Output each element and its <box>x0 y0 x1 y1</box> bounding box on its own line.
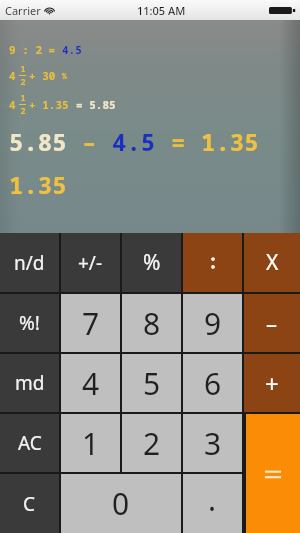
staticText: 8 <box>143 303 161 344</box>
staticText: – <box>266 308 278 338</box>
staticText: % <box>143 248 161 277</box>
button[interactable]: 9 <box>183 294 242 352</box>
button[interactable]: 2 <box>122 414 181 472</box>
staticText: 6 <box>204 363 222 404</box>
staticText: AC <box>18 430 42 456</box>
button[interactable]: 8 <box>122 294 181 352</box>
button[interactable]: %! <box>0 294 59 352</box>
staticText: – <box>82 125 97 158</box>
button[interactable]: Equals <box>246 414 300 533</box>
staticText: 11:05 AM <box>137 3 186 18</box>
staticText: n/d <box>14 250 45 276</box>
staticText: % <box>62 70 67 81</box>
staticText: md <box>15 370 45 396</box>
staticText: . <box>208 479 217 520</box>
staticText: 4 <box>9 97 16 112</box>
staticText: 3 <box>204 423 222 464</box>
staticText: C <box>23 491 36 517</box>
staticText: X <box>266 248 279 277</box>
button[interactable]: X <box>244 233 300 292</box>
staticText: 9 : 2 = <box>9 42 62 57</box>
button[interactable]: 3 <box>183 414 242 472</box>
staticText: 1 <box>20 63 26 75</box>
staticText: %! <box>19 310 40 336</box>
staticText: 4 <box>9 68 16 83</box>
staticText: 5.85 <box>9 125 67 158</box>
staticText: 1.35 <box>201 125 259 158</box>
staticText: + 30 <box>29 68 62 83</box>
other: Equals <box>260 461 286 487</box>
staticText: + 1.35 <box>29 97 76 112</box>
button[interactable]: C <box>0 474 59 533</box>
button[interactable]: 1 <box>61 414 120 472</box>
staticText: 9 <box>204 303 222 344</box>
staticText: Carrier <box>5 3 41 18</box>
staticText: 2 <box>20 105 26 117</box>
button[interactable]: 5 <box>122 354 181 412</box>
button[interactable]: Divide <box>183 233 242 292</box>
staticText: +/- <box>78 250 103 276</box>
button[interactable]: 7 <box>61 294 120 352</box>
staticText: 4 <box>82 363 100 404</box>
button[interactable]: md <box>0 354 59 412</box>
staticText: 4.5 <box>112 125 156 158</box>
staticText: 5 <box>143 363 161 404</box>
button[interactable]: + <box>244 354 300 412</box>
other: Divide <box>202 252 224 274</box>
staticText: = 5.85 <box>76 97 116 112</box>
button[interactable]: AC <box>0 414 59 472</box>
staticText: = <box>171 125 186 158</box>
button[interactable]: % <box>122 233 181 292</box>
staticText: + <box>265 367 279 400</box>
button[interactable]: 4 <box>61 354 120 412</box>
staticText: 2 <box>20 76 26 88</box>
staticText: 1.35 <box>9 168 67 201</box>
button[interactable]: – <box>244 294 300 352</box>
button[interactable]: +/- <box>61 233 120 292</box>
staticText: 1 <box>20 92 26 104</box>
staticText: 0 <box>112 483 130 524</box>
button[interactable]: n/d <box>0 233 59 292</box>
staticText: 1 <box>82 423 100 464</box>
button[interactable]: 6 <box>183 354 242 412</box>
staticText: 2 <box>143 423 161 464</box>
button[interactable]: 0 <box>61 474 181 533</box>
staticText: 4.5 <box>62 42 82 57</box>
staticText: 7 <box>82 303 100 344</box>
button[interactable]: . <box>183 474 242 533</box>
